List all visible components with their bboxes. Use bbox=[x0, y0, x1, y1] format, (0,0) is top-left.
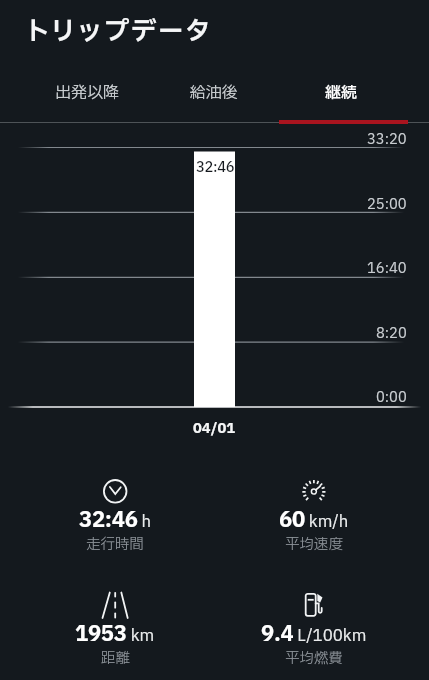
staticText: 継続 bbox=[325, 81, 358, 105]
staticText: 1953 km bbox=[75, 619, 155, 649]
staticText: 25:00 bbox=[367, 194, 407, 214]
staticText: 平均燃費 bbox=[285, 648, 343, 670]
staticText: 04/01 bbox=[193, 418, 236, 438]
staticText: 8:20 bbox=[376, 323, 407, 343]
staticText: 60 km/h bbox=[279, 505, 349, 535]
staticText: トリップデータ bbox=[24, 12, 212, 51]
staticText: 平均速度 bbox=[285, 534, 343, 556]
staticText: 9.4 L/100km bbox=[261, 619, 367, 649]
staticText: 給油後 bbox=[190, 81, 239, 105]
staticText: 0:00 bbox=[376, 387, 407, 407]
staticText: 33:20 bbox=[367, 129, 407, 149]
staticText: 出発以降 bbox=[55, 81, 120, 105]
staticText: 32:46 bbox=[196, 157, 235, 177]
staticText: 距離 bbox=[101, 648, 130, 670]
staticText: 32:46 h bbox=[79, 505, 152, 535]
staticText: 16:40 bbox=[367, 258, 407, 278]
staticText: 走行時間 bbox=[86, 534, 144, 556]
